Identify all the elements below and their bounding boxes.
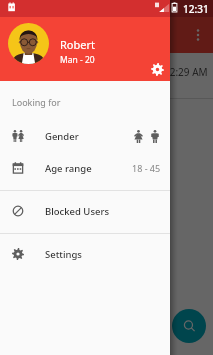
staticText: Robert: [60, 37, 95, 52]
staticText: 18 - 45: [132, 162, 161, 174]
button[interactable]: Search: [172, 309, 206, 343]
staticText: Age range: [45, 162, 92, 175]
button[interactable]: 12:29 AM: [0, 53, 213, 98]
button[interactable]: Age range: [0, 152, 170, 184]
button[interactable]: Blocked Users: [0, 195, 170, 227]
button[interactable]: More options: [187, 24, 209, 46]
button[interactable]: Edit profile: [150, 62, 164, 76]
staticText: Settings: [45, 248, 82, 261]
staticText: Looking for: [12, 96, 61, 108]
button[interactable]: Gender: [0, 120, 170, 152]
staticText: Gender: [45, 130, 79, 143]
button[interactable]: Settings: [0, 238, 170, 270]
staticText: Blocked Users: [45, 205, 110, 218]
staticText: 12:29 AM: [164, 65, 208, 79]
staticText: Man - 20: [60, 54, 95, 66]
staticText: 12:31: [183, 2, 209, 16]
